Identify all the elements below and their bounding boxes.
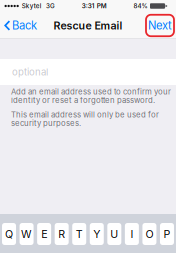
- button[interactable]: Q: [2, 223, 16, 245]
- staticText: I: [130, 227, 133, 240]
- button[interactable]: R: [55, 223, 69, 245]
- button[interactable]: T: [72, 223, 86, 245]
- button[interactable]: U: [107, 223, 121, 245]
- button[interactable]: P: [160, 223, 174, 245]
- staticText: Add an email address used to confirm you…: [11, 87, 171, 105]
- staticText: optional: [12, 66, 48, 78]
- staticText: 84%: [134, 2, 148, 10]
- button[interactable]: E: [37, 223, 51, 245]
- staticText: R: [58, 227, 65, 240]
- staticText: 3:31 PM: [82, 2, 107, 10]
- staticText: This email address will only be used for…: [11, 110, 159, 128]
- staticText: E: [41, 227, 47, 240]
- staticText: Q: [5, 227, 13, 240]
- button[interactable]: Next: [146, 15, 176, 36]
- staticText: O: [145, 227, 153, 240]
- staticText: Rescue Email: [53, 19, 122, 32]
- staticText: Back: [12, 19, 37, 32]
- staticText: W: [21, 227, 32, 240]
- staticText: U: [110, 227, 118, 240]
- staticText: T: [76, 227, 83, 240]
- button[interactable]: I: [125, 223, 139, 245]
- staticText: Skytel: [22, 2, 42, 10]
- button[interactable]: Back: [0, 12, 41, 38]
- button[interactable]: Y: [90, 223, 104, 245]
- button[interactable]: W: [20, 223, 34, 245]
- staticText: 3G: [46, 2, 55, 10]
- staticText: Next: [148, 19, 172, 32]
- staticText: P: [163, 227, 170, 240]
- staticText: Y: [93, 227, 100, 240]
- button[interactable]: O: [142, 223, 156, 245]
